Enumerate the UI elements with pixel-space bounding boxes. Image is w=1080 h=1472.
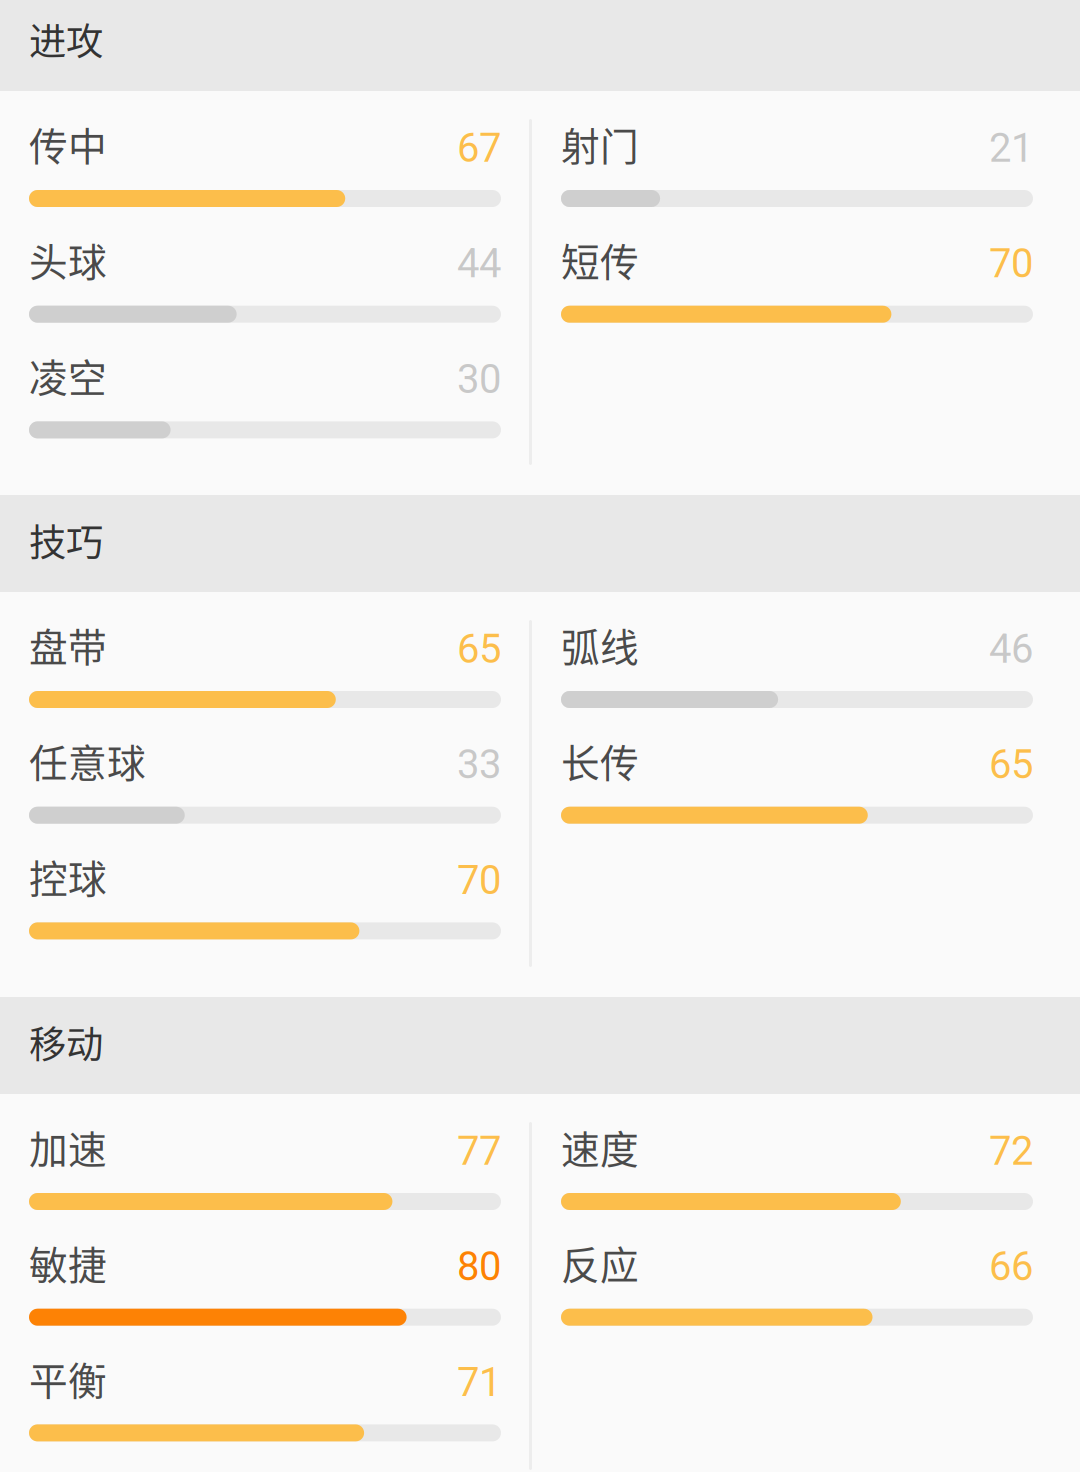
staticText: 70 [989, 240, 1033, 287]
staticText: 技巧 [29, 513, 103, 567]
staticText: 71 [457, 1359, 501, 1406]
staticText: 加速 [29, 1119, 107, 1175]
staticText: 80 [457, 1243, 501, 1290]
staticText: 弧线 [561, 617, 639, 673]
staticText: 33 [457, 741, 501, 788]
staticText: 速度 [561, 1119, 639, 1175]
staticText: 65 [457, 626, 501, 672]
staticText: 任意球 [29, 733, 146, 789]
staticText: 77 [457, 1128, 501, 1174]
staticText: 短传 [561, 232, 639, 288]
staticText: 反应 [561, 1235, 639, 1291]
staticText: 46 [989, 626, 1033, 672]
staticText: 进攻 [29, 12, 103, 66]
staticText: 30 [457, 356, 501, 403]
staticText: 65 [989, 741, 1033, 788]
staticText: 头球 [29, 232, 107, 288]
staticText: 66 [989, 1243, 1033, 1290]
staticText: 70 [457, 857, 501, 904]
staticText: 72 [989, 1128, 1033, 1174]
staticText: 盘带 [29, 617, 107, 673]
staticText: 敏捷 [29, 1235, 107, 1291]
staticText: 射门 [561, 116, 639, 172]
staticText: 67 [457, 125, 501, 171]
staticText: 凌空 [29, 347, 107, 403]
staticText: 长传 [561, 733, 639, 789]
staticText: 移动 [29, 1015, 103, 1069]
staticText: 21 [989, 125, 1033, 171]
staticText: 44 [457, 240, 501, 287]
staticText: 平衡 [29, 1350, 107, 1406]
staticText: 控球 [29, 848, 107, 904]
staticText: 传中 [29, 116, 107, 172]
